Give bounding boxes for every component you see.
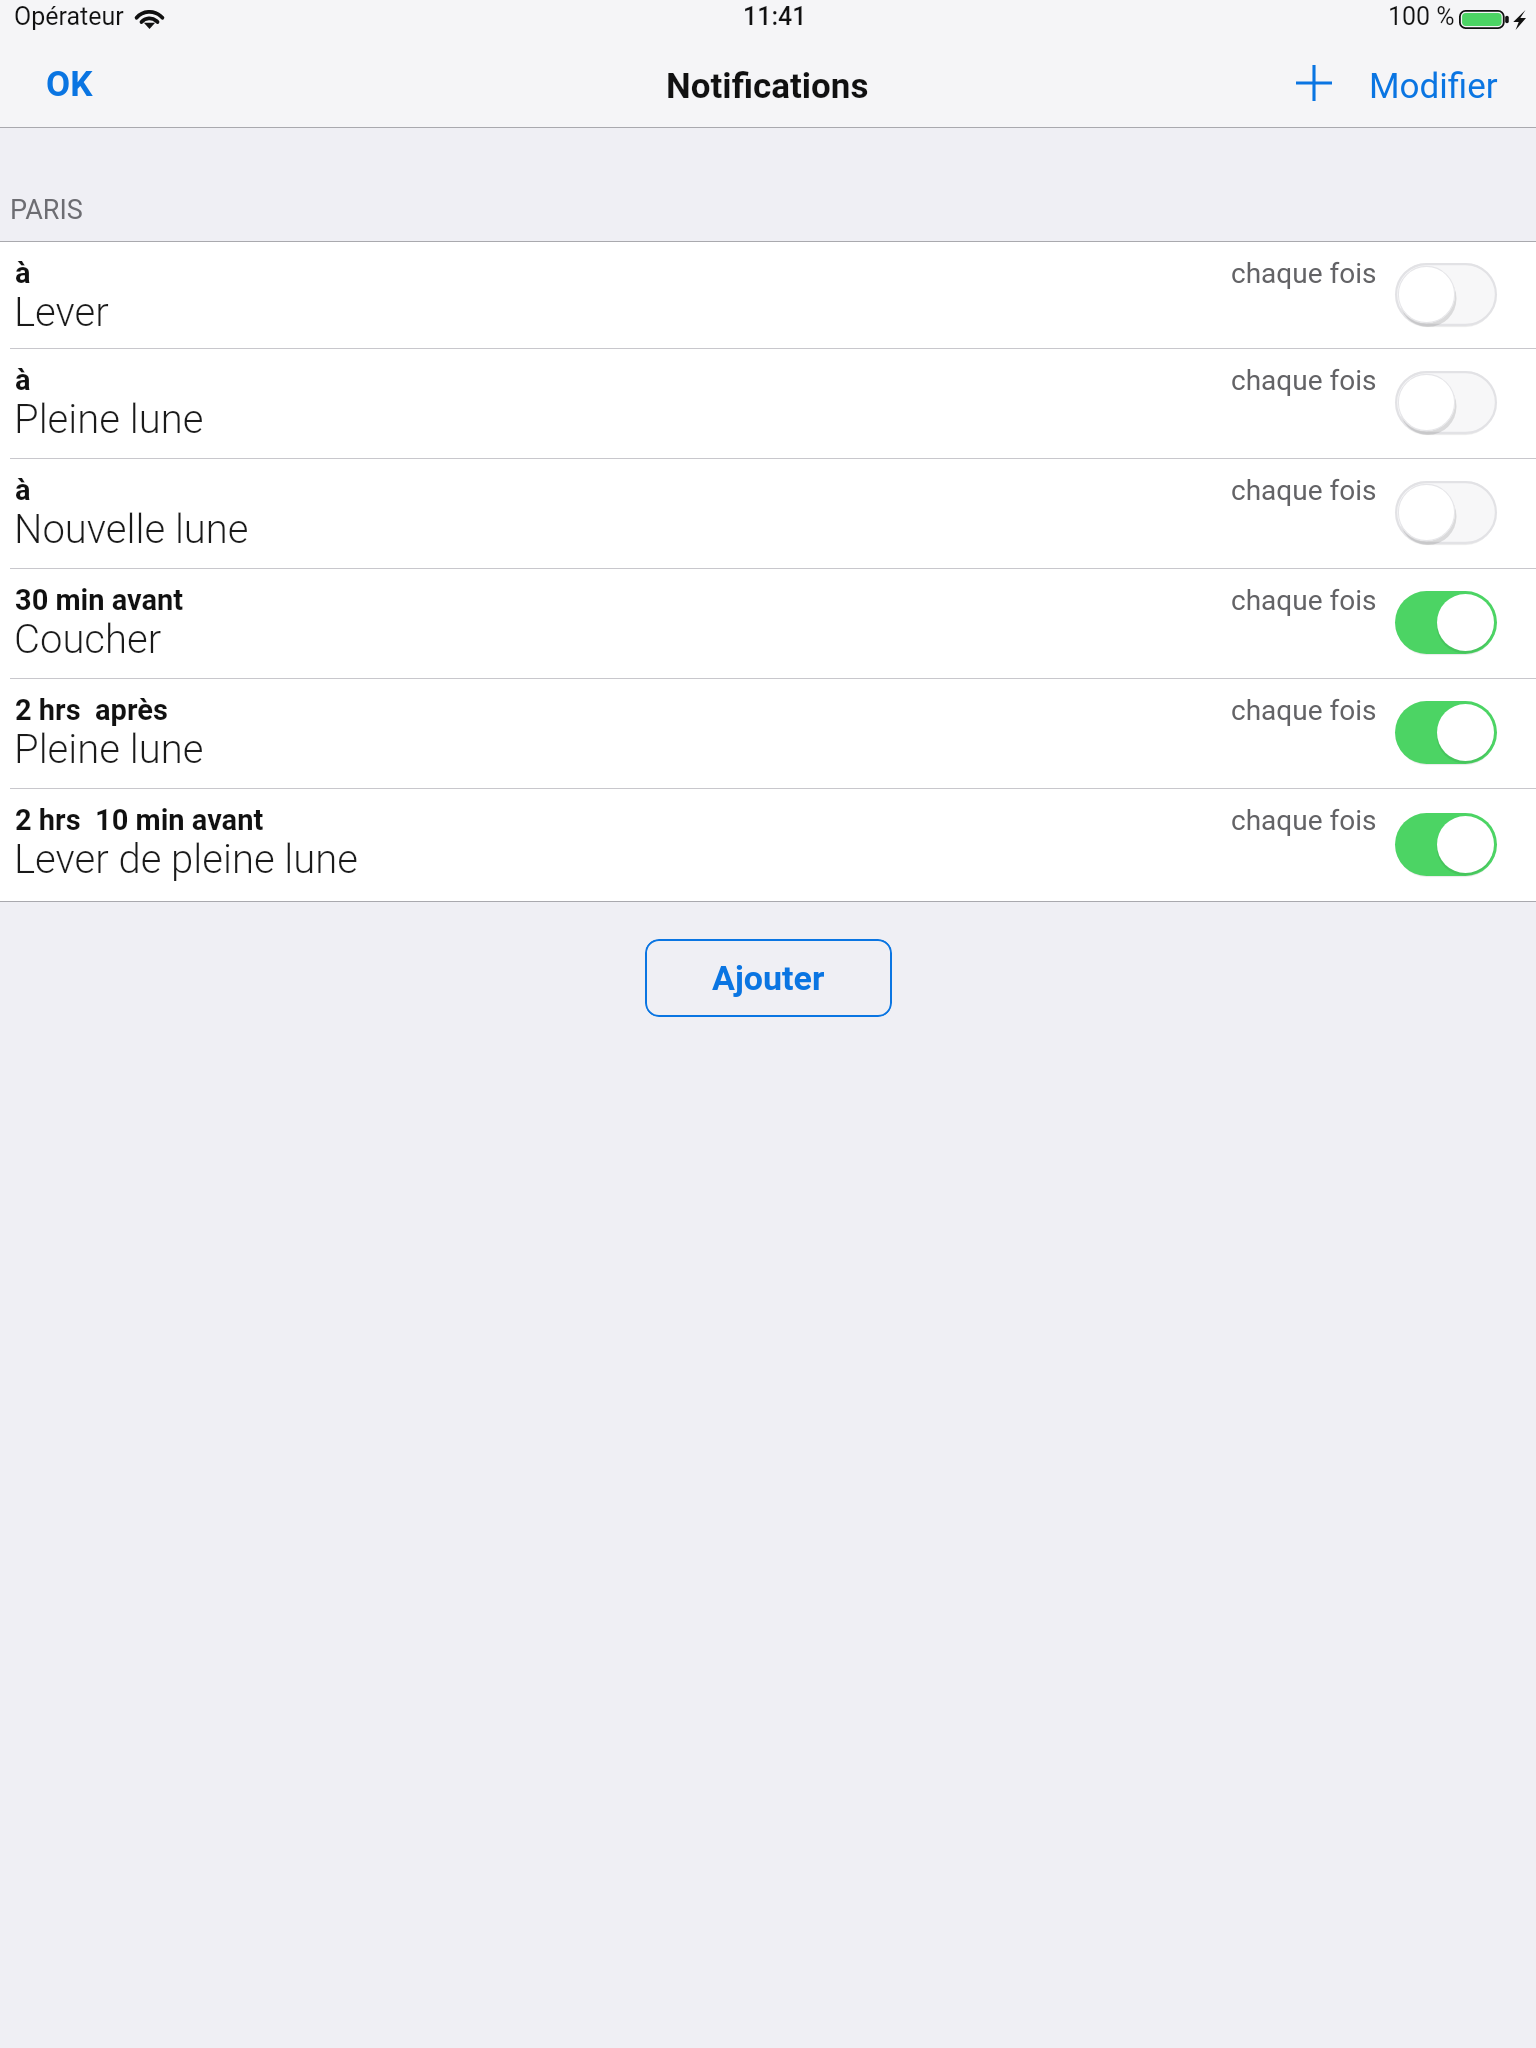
staticText: Pleine lune [14,726,204,773]
staticText: OK [46,64,93,105]
button[interactable]: Désactivé [1395,481,1497,544]
button[interactable]: OK [24,50,115,119]
staticText: Ajouter [712,958,825,998]
staticText: chaque fois [1231,584,1377,617]
button[interactable]: Ajouter une notification [1285,54,1343,112]
staticText: Nouvelle lune [14,506,249,553]
staticText: chaque fois [1231,474,1377,507]
button[interactable]: Activé [1395,813,1497,876]
button[interactable]: Modifier [1355,52,1512,121]
button[interactable]: 2 hrs après [0,678,1536,788]
staticText: Modifier [1369,66,1498,107]
staticText: 100 % [1388,2,1455,31]
button[interactable]: Désactivé [1395,263,1497,326]
button[interactable]: Ajouter [645,939,892,1017]
staticText: à [15,363,31,397]
staticText: chaque fois [1231,804,1377,837]
staticText: PARIS [10,194,83,226]
staticText: Coucher [14,616,162,663]
staticText: Notifications [666,66,869,107]
staticText: Lever de pleine lune [14,836,358,883]
staticText: chaque fois [1231,257,1377,290]
staticText: à [15,256,31,290]
button[interactable]: 30 min avant [0,568,1536,678]
button[interactable]: Activé [1395,701,1497,764]
staticText: chaque fois [1231,364,1377,397]
button[interactable]: Désactivé [1395,371,1497,434]
button[interactable]: à [0,241,1536,348]
button[interactable]: 2 hrs 10 min avant [0,788,1536,901]
button[interactable]: à [0,458,1536,568]
button[interactable]: Activé [1395,591,1497,654]
staticText: 30 min avant [15,583,184,617]
button[interactable]: à [0,348,1536,458]
staticText: 2 hrs après [15,693,168,727]
staticText: Opérateur [14,2,124,31]
staticText: à [15,473,31,507]
staticText: 2 hrs 10 min avant [15,803,264,837]
staticText: chaque fois [1231,694,1377,727]
staticText: Pleine lune [14,396,204,443]
staticText: 11:41 [743,2,807,31]
staticText: Lever [14,289,109,336]
